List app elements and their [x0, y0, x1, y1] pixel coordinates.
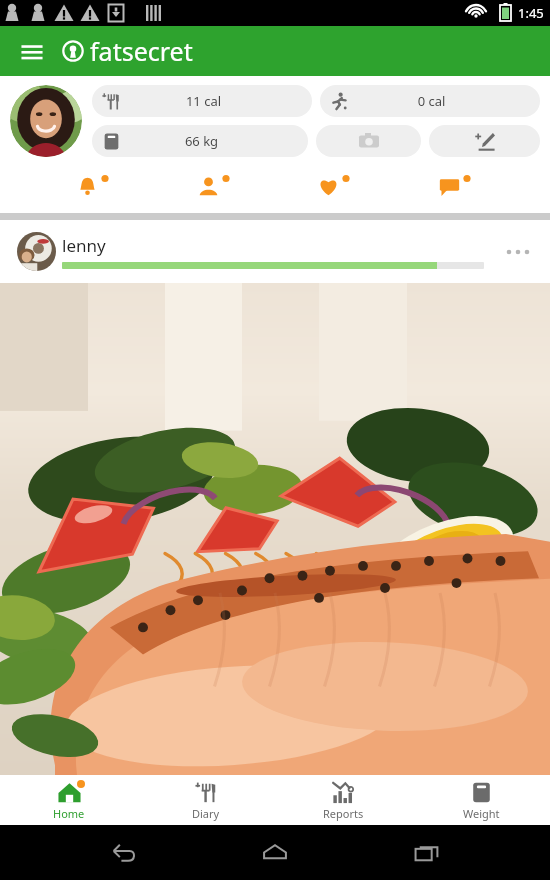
button[interactable]: Take photo	[316, 125, 421, 157]
button[interactable]: fatsecret	[62, 34, 193, 68]
button[interactable]: More options	[496, 230, 540, 274]
staticText: 66 kg	[121, 132, 282, 150]
button[interactable]: Messages	[430, 169, 482, 203]
staticText: Home	[53, 806, 85, 821]
button[interactable]: Reports	[274, 775, 412, 825]
staticText: lenny	[62, 234, 106, 257]
button[interactable]: 11 cal	[92, 85, 312, 117]
button[interactable]: 66 kg	[92, 125, 308, 157]
button[interactable]: Profile photo	[10, 85, 82, 157]
staticText: Weight	[463, 806, 500, 821]
staticText: fatsecret	[90, 34, 193, 68]
button[interactable]: lenny	[0, 220, 550, 283]
button[interactable]: Home	[247, 825, 303, 880]
button[interactable]: Likes	[309, 169, 361, 203]
button[interactable]: Recent apps	[399, 825, 455, 880]
button[interactable]: Add entry	[429, 125, 540, 157]
button[interactable]: Notifications	[68, 169, 120, 203]
staticText: Diary	[192, 806, 220, 821]
staticText: 0 cal	[349, 92, 514, 110]
button[interactable]: Friends	[189, 169, 241, 203]
button[interactable]: Back	[96, 825, 152, 880]
button[interactable]: 0 cal	[320, 85, 540, 117]
button[interactable]: Home	[0, 775, 137, 825]
staticText: 11 cal	[121, 92, 286, 110]
staticText: Reports	[323, 806, 364, 821]
staticText: 1:45	[518, 4, 544, 22]
button[interactable]: Weight	[412, 775, 550, 825]
button[interactable]: Open navigation menu	[10, 29, 54, 73]
button[interactable]: Diary	[137, 775, 274, 825]
